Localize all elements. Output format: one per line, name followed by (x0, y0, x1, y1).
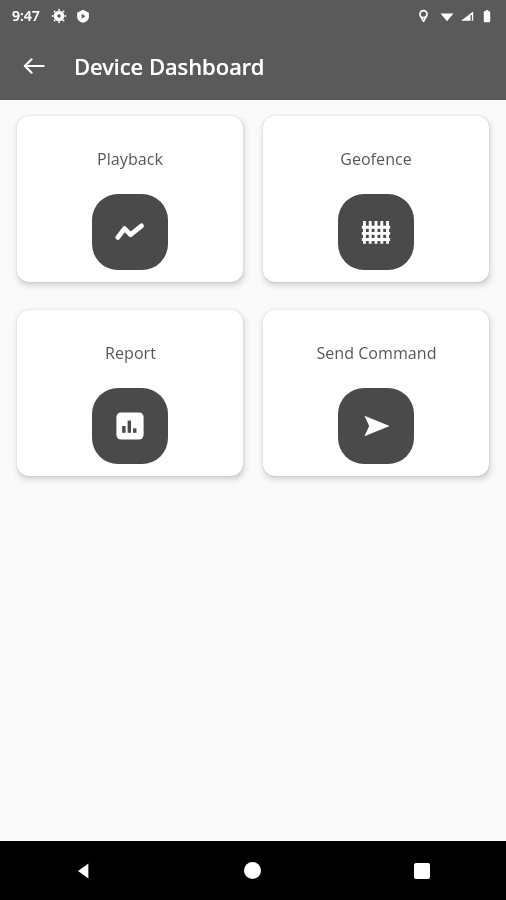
staticText: Report (105, 342, 156, 364)
staticText: 9:47 (12, 6, 40, 25)
button[interactable]: Playback (17, 116, 243, 282)
button[interactable]: Geofence (263, 116, 489, 282)
button[interactable]: Back (0, 841, 168, 900)
staticText: Geofence (340, 148, 412, 170)
staticText: Device Dashboard (74, 51, 265, 81)
button[interactable]: Recent apps (337, 841, 506, 900)
button[interactable]: Send Command (263, 310, 489, 476)
button[interactable]: Home (168, 841, 337, 900)
staticText: Playback (97, 148, 163, 170)
staticText: Send Command (316, 342, 437, 364)
button[interactable]: Report (17, 310, 243, 476)
button[interactable]: Back (10, 42, 58, 90)
